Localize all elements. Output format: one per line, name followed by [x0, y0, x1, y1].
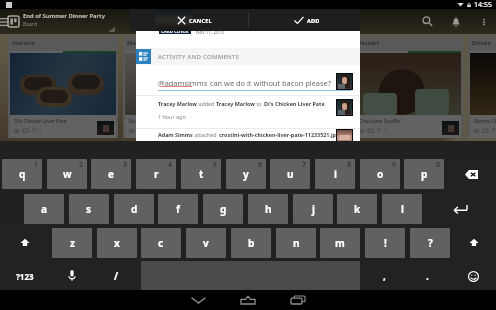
button[interactable]: y [226, 159, 266, 189]
button[interactable]: q [2, 159, 42, 189]
staticText: 2 [79, 160, 84, 170]
button[interactable]: b [231, 228, 271, 258]
staticText: 7 [302, 160, 307, 170]
button[interactable]: Voice input [51, 261, 92, 291]
button[interactable]: Home [224, 290, 272, 310]
staticText: 1 [384, 128, 387, 133]
button[interactable]: More options [472, 9, 496, 34]
staticText: Mains [127, 39, 145, 47]
button[interactable]: Emoji [453, 261, 494, 291]
staticText: added [197, 100, 216, 107]
staticText: z [70, 236, 75, 250]
button[interactable]: l [382, 194, 422, 224]
button[interactable]: ! [365, 228, 405, 258]
staticText: o [377, 167, 384, 181]
button[interactable]: o [360, 159, 400, 189]
button[interactable]: Board [6, 9, 20, 34]
staticText: can we do it without bacon please? [208, 78, 331, 88]
staticText: m [335, 236, 345, 250]
button[interactable]: CANCEL [130, 9, 248, 31]
staticText: w [63, 167, 72, 181]
staticText: , [383, 269, 386, 283]
staticText: Chocolate Souffle [359, 118, 401, 125]
button[interactable]: g [203, 194, 243, 224]
staticText: g [220, 202, 227, 216]
button[interactable]: x [97, 228, 137, 258]
button[interactable]: Shift [453, 228, 494, 258]
button[interactable]: j [293, 194, 333, 224]
staticText: l [401, 202, 404, 216]
staticText: 6 [258, 160, 263, 170]
button[interactable]: p [404, 159, 444, 189]
button[interactable]: i [315, 159, 355, 189]
staticText: ADD [307, 17, 320, 24]
button[interactable]: , [365, 261, 404, 291]
staticText: CANCEL [189, 17, 212, 24]
staticText: 1 [34, 160, 39, 170]
staticText: Starters [12, 39, 35, 47]
button[interactable]: Backspace [448, 159, 494, 189]
staticText: Tracey Marlow [216, 100, 255, 107]
staticText: y [243, 167, 249, 181]
button[interactable]: u [270, 159, 310, 189]
button[interactable]: v [186, 228, 226, 258]
button[interactable]: t [181, 159, 221, 189]
button[interactable]: ? [410, 228, 450, 258]
button[interactable]: ADD [249, 9, 360, 31]
button[interactable]: w [47, 159, 87, 189]
button[interactable]: d [114, 194, 154, 224]
staticText: crostini-with-chicken-liver-pate-1123352… [219, 131, 340, 138]
button[interactable]: c [141, 228, 181, 258]
staticText: c [158, 236, 164, 250]
button[interactable]: . [408, 261, 447, 291]
staticText: Ramos Gin Fizz [474, 118, 496, 125]
button[interactable]: Notifications [440, 9, 472, 34]
button[interactable]: e [91, 159, 131, 189]
button[interactable]: Space [141, 261, 360, 291]
button[interactable]: Hide keyboard [174, 290, 222, 310]
staticText: 1 [39, 128, 42, 133]
button[interactable]: r [136, 159, 176, 189]
staticText: k [354, 202, 361, 216]
staticText: h [265, 202, 272, 216]
button[interactable]: a [24, 194, 64, 224]
staticText: d [131, 202, 138, 216]
button[interactable]: m [320, 228, 360, 258]
staticText: a [41, 202, 47, 216]
staticText: f [176, 202, 180, 216]
button[interactable]: Enter [425, 194, 494, 224]
button[interactable]: Search [414, 9, 440, 34]
staticText: Dessert [357, 39, 379, 47]
staticText: Tracey Marlow [158, 100, 197, 107]
button[interactable]: ?123 [2, 261, 47, 291]
button[interactable]: z [52, 228, 92, 258]
button[interactable]: h [248, 194, 288, 224]
staticText: x [114, 236, 120, 250]
staticText: 9 [392, 160, 397, 170]
staticText: i [334, 167, 337, 181]
staticText: . [426, 269, 429, 283]
staticText: ! [384, 236, 387, 250]
button[interactable]: / [96, 261, 136, 291]
staticText: u [287, 167, 294, 181]
staticText: @adamsimms [158, 78, 208, 88]
staticText: CARD COVER [161, 31, 189, 34]
staticText: ? [428, 236, 433, 250]
button[interactable]: s [69, 194, 109, 224]
staticText: Board [23, 21, 38, 28]
staticText: Adam Simms [158, 131, 193, 138]
button[interactable]: f [158, 194, 198, 224]
button[interactable]: Shift [2, 228, 47, 258]
staticText: 5 [213, 160, 218, 170]
button[interactable]: Menu [0, 9, 12, 34]
staticText: / [114, 269, 119, 283]
button[interactable]: n [276, 228, 316, 258]
button[interactable]: k [337, 194, 377, 224]
button[interactable]: Recents [274, 290, 322, 310]
staticText: 1 [154, 128, 157, 133]
staticText: Drinks [472, 39, 491, 47]
staticText: 3 [123, 160, 128, 170]
staticText: to [255, 100, 264, 107]
staticText: ACTIVITY AND COMMENTS [158, 53, 240, 61]
staticText: 0 [436, 160, 441, 170]
